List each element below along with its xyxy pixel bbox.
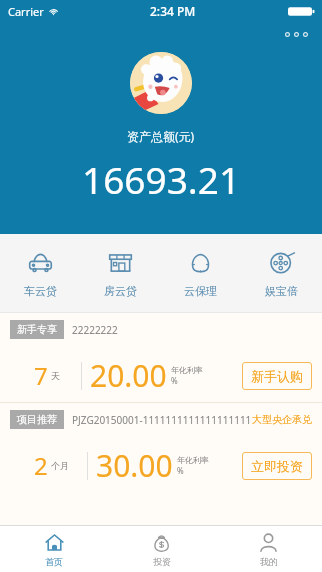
staticText: 新手专享 [17, 323, 57, 336]
staticText: % [177, 465, 184, 476]
staticText: 2 [34, 449, 48, 482]
staticText: 个月 [51, 460, 69, 471]
staticText: 我的 [260, 556, 278, 567]
button[interactable]: 投资 [108, 526, 215, 572]
staticText: 云保理 [184, 284, 217, 298]
staticText: 大型央企承兑 [252, 413, 312, 426]
staticText: 年化利率 [171, 365, 203, 375]
staticText: 首页 [45, 556, 63, 567]
staticText: 娱宝倍 [265, 284, 298, 298]
staticText: 房云贷 [104, 284, 137, 298]
staticText: 立即投资 [251, 458, 303, 474]
button[interactable]: 娱宝倍 [241, 234, 322, 312]
button[interactable]: 首页 [0, 526, 108, 572]
staticText: 投资 [153, 556, 171, 567]
button[interactable]: 云保理 [160, 234, 241, 312]
staticText: 30.00 [96, 445, 173, 486]
staticText: 7 [34, 359, 48, 392]
staticText: 22222222 [72, 323, 118, 337]
staticText: 新手认购 [251, 368, 303, 384]
staticText: 16693.21 [82, 154, 241, 204]
button[interactable]: 新手认购 [242, 362, 312, 390]
staticText: 天 [51, 370, 60, 381]
staticText: 20.00 [90, 355, 167, 396]
staticText: % [171, 375, 178, 386]
staticText: 资产总额(元) [127, 128, 195, 144]
button[interactable]: Profile avatar [130, 52, 192, 114]
staticText: 2:34 PM [150, 3, 196, 19]
button[interactable]: 房云贷 [80, 234, 160, 312]
staticText: Carrier [8, 4, 44, 19]
button[interactable]: More options [281, 28, 312, 41]
button[interactable]: 我的 [215, 526, 322, 572]
staticText: 年化利率 [177, 455, 209, 465]
staticText: PJZG20150001-1111111111111111111 [72, 413, 252, 427]
button[interactable]: 车云贷 [0, 234, 80, 312]
staticText: 项目推荐 [17, 413, 57, 426]
button[interactable]: 项目推荐 [0, 403, 322, 492]
button[interactable]: 立即投资 [242, 452, 312, 480]
button[interactable]: 新手专享 [0, 313, 322, 402]
staticText: 车云贷 [24, 284, 57, 298]
